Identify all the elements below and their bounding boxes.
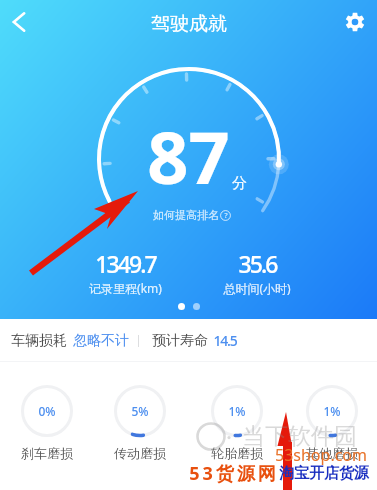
staticText: 预计寿命	[152, 332, 208, 350]
staticText: 0%	[38, 403, 56, 419]
button[interactable]: 0%	[9, 362, 85, 414]
staticText: 87	[147, 107, 230, 205]
button[interactable]: Settings	[340, 7, 370, 37]
button[interactable]: 5%	[102, 362, 178, 414]
button[interactable]: Back	[1, 4, 37, 40]
staticText: 5%	[131, 403, 149, 419]
staticText: 忽略不计	[73, 332, 129, 350]
staticText: 传动磨损	[114, 445, 166, 461]
staticText: 车辆损耗	[11, 332, 67, 350]
staticText: 35.6	[238, 248, 277, 279]
staticText: ?	[224, 211, 228, 221]
staticText: 记录里程(km)	[89, 280, 162, 296]
staticText: 总时间(小时)	[223, 280, 291, 296]
button[interactable]: 1%	[294, 362, 370, 414]
staticText: 1%	[323, 403, 341, 419]
button[interactable]: 1%	[199, 362, 275, 414]
staticText: 53货源网	[189, 461, 279, 486]
staticText: 14.5	[213, 331, 237, 350]
staticText: 淘宝开店货源	[279, 464, 369, 483]
staticText: 刹车磨损	[21, 445, 73, 461]
staticText: 如何提高排名	[153, 208, 219, 222]
button[interactable]: 如何提高排名	[153, 208, 231, 222]
staticText: 驾驶成就	[151, 12, 227, 36]
staticText: 53shop.com	[275, 444, 367, 466]
staticText: 当下软件园	[242, 422, 357, 451]
staticText: 分	[232, 174, 247, 193]
staticText: 1349.7	[95, 248, 156, 279]
staticText: 轮胎磨损	[211, 445, 263, 461]
staticText: 其他磨损	[306, 445, 358, 461]
staticText: 1%	[228, 403, 246, 419]
